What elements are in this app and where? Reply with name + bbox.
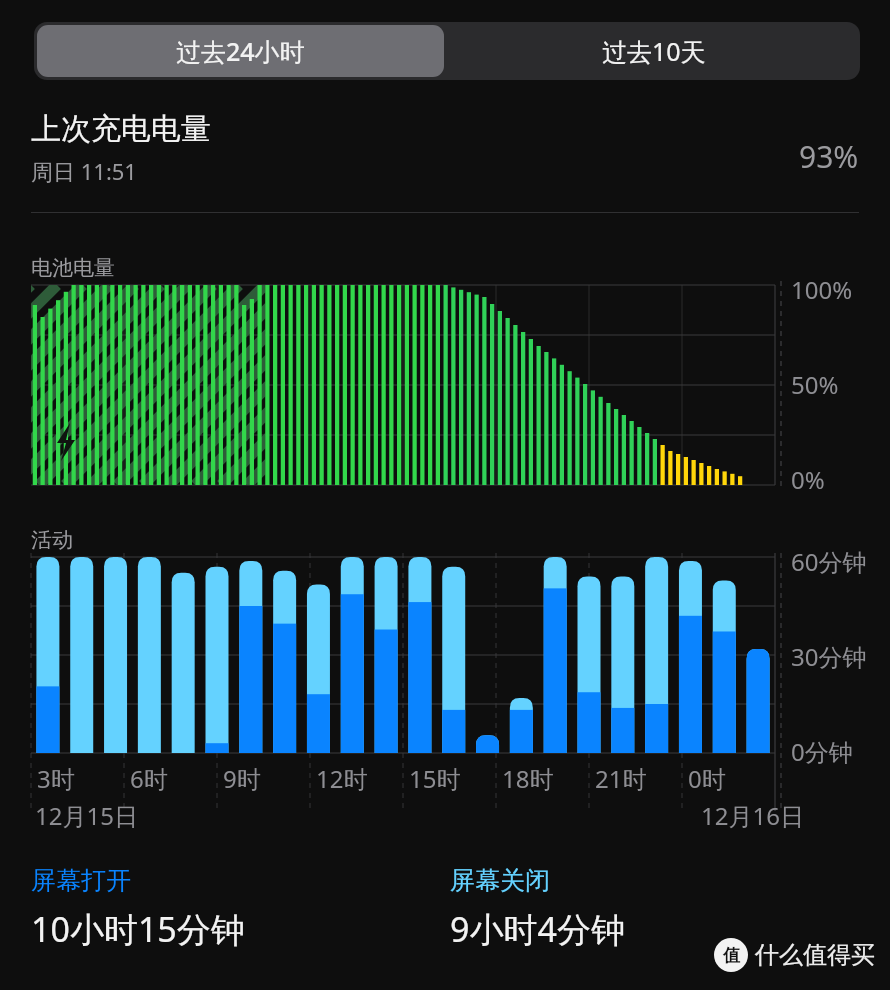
staticText: 上次充电电量 xyxy=(31,110,211,148)
staticText: 过去24小时 xyxy=(176,34,305,68)
staticText: 9时 xyxy=(223,762,261,795)
staticText: 18时 xyxy=(502,762,554,795)
button[interactable]: 过去24小时 xyxy=(37,25,444,77)
staticText: 6时 xyxy=(130,762,168,795)
staticText: 30分钟 xyxy=(791,640,867,673)
staticText: 周日 11:51 xyxy=(31,156,137,186)
staticText: 12时 xyxy=(316,762,368,795)
staticText: 50% xyxy=(791,368,839,401)
staticText: 15时 xyxy=(409,762,461,795)
staticText: 屏幕关闭 xyxy=(450,865,550,896)
staticText: 60分钟 xyxy=(791,545,867,578)
staticText: 屏幕打开 xyxy=(31,865,131,896)
staticText: 0% xyxy=(791,463,825,496)
staticText: 3时 xyxy=(37,762,75,795)
staticText: 电池电量 xyxy=(31,255,115,281)
staticText: 过去10天 xyxy=(602,34,706,68)
staticText: 0时 xyxy=(688,762,726,795)
staticText: 10小时15分钟 xyxy=(31,906,245,952)
staticText: 0分钟 xyxy=(791,735,853,768)
staticText: 活动 xyxy=(31,527,73,553)
button[interactable]: 屏幕关闭 xyxy=(450,865,850,960)
staticText: 21时 xyxy=(595,762,647,795)
button[interactable]: 过去10天 xyxy=(450,25,857,77)
staticText: 100% xyxy=(791,273,853,306)
staticText: 12月16日 xyxy=(701,799,804,832)
staticText: 93% xyxy=(799,136,859,177)
staticText: 12月15日 xyxy=(35,799,138,832)
staticText: 值 xyxy=(723,945,740,966)
button[interactable]: 屏幕打开 xyxy=(31,865,431,960)
button[interactable]: 上次充电电量 xyxy=(31,110,859,205)
staticText: 什么值得买 xyxy=(755,940,875,970)
staticText: 9小时4分钟 xyxy=(450,906,625,952)
